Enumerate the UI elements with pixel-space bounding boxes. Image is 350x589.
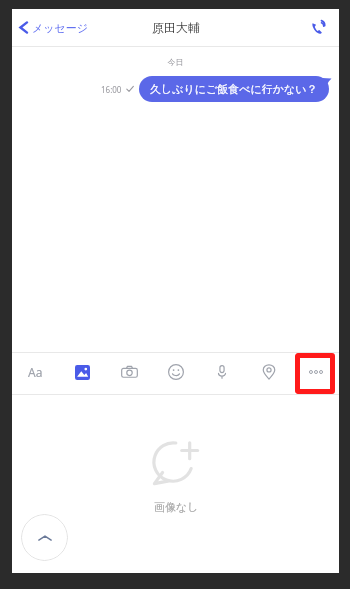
staticText: 画像なし: [154, 500, 199, 514]
staticText: 16:00: [101, 84, 122, 95]
button[interactable]: メッセージ: [12, 16, 95, 39]
button[interactable]: Voice: [205, 353, 239, 391]
staticText: 原田大輔: [152, 20, 200, 35]
button[interactable]: Photos: [65, 353, 99, 391]
button[interactable]: Expand: [21, 514, 68, 561]
button[interactable]: Camera: [112, 353, 146, 391]
staticText: Aa: [28, 364, 43, 380]
button[interactable]: More options: [299, 353, 333, 391]
button[interactable]: Call: [305, 15, 331, 41]
button[interactable]: Location: [252, 353, 286, 391]
button[interactable]: Stickers: [159, 353, 193, 391]
button[interactable]: 久しぶりにご飯食べに行かない？: [139, 76, 329, 102]
staticText: 今日: [12, 57, 339, 67]
staticText: メッセージ: [32, 21, 89, 35]
button[interactable]: Text format: [18, 353, 52, 391]
staticText: 久しぶりにご飯食べに行かない？: [150, 82, 318, 96]
